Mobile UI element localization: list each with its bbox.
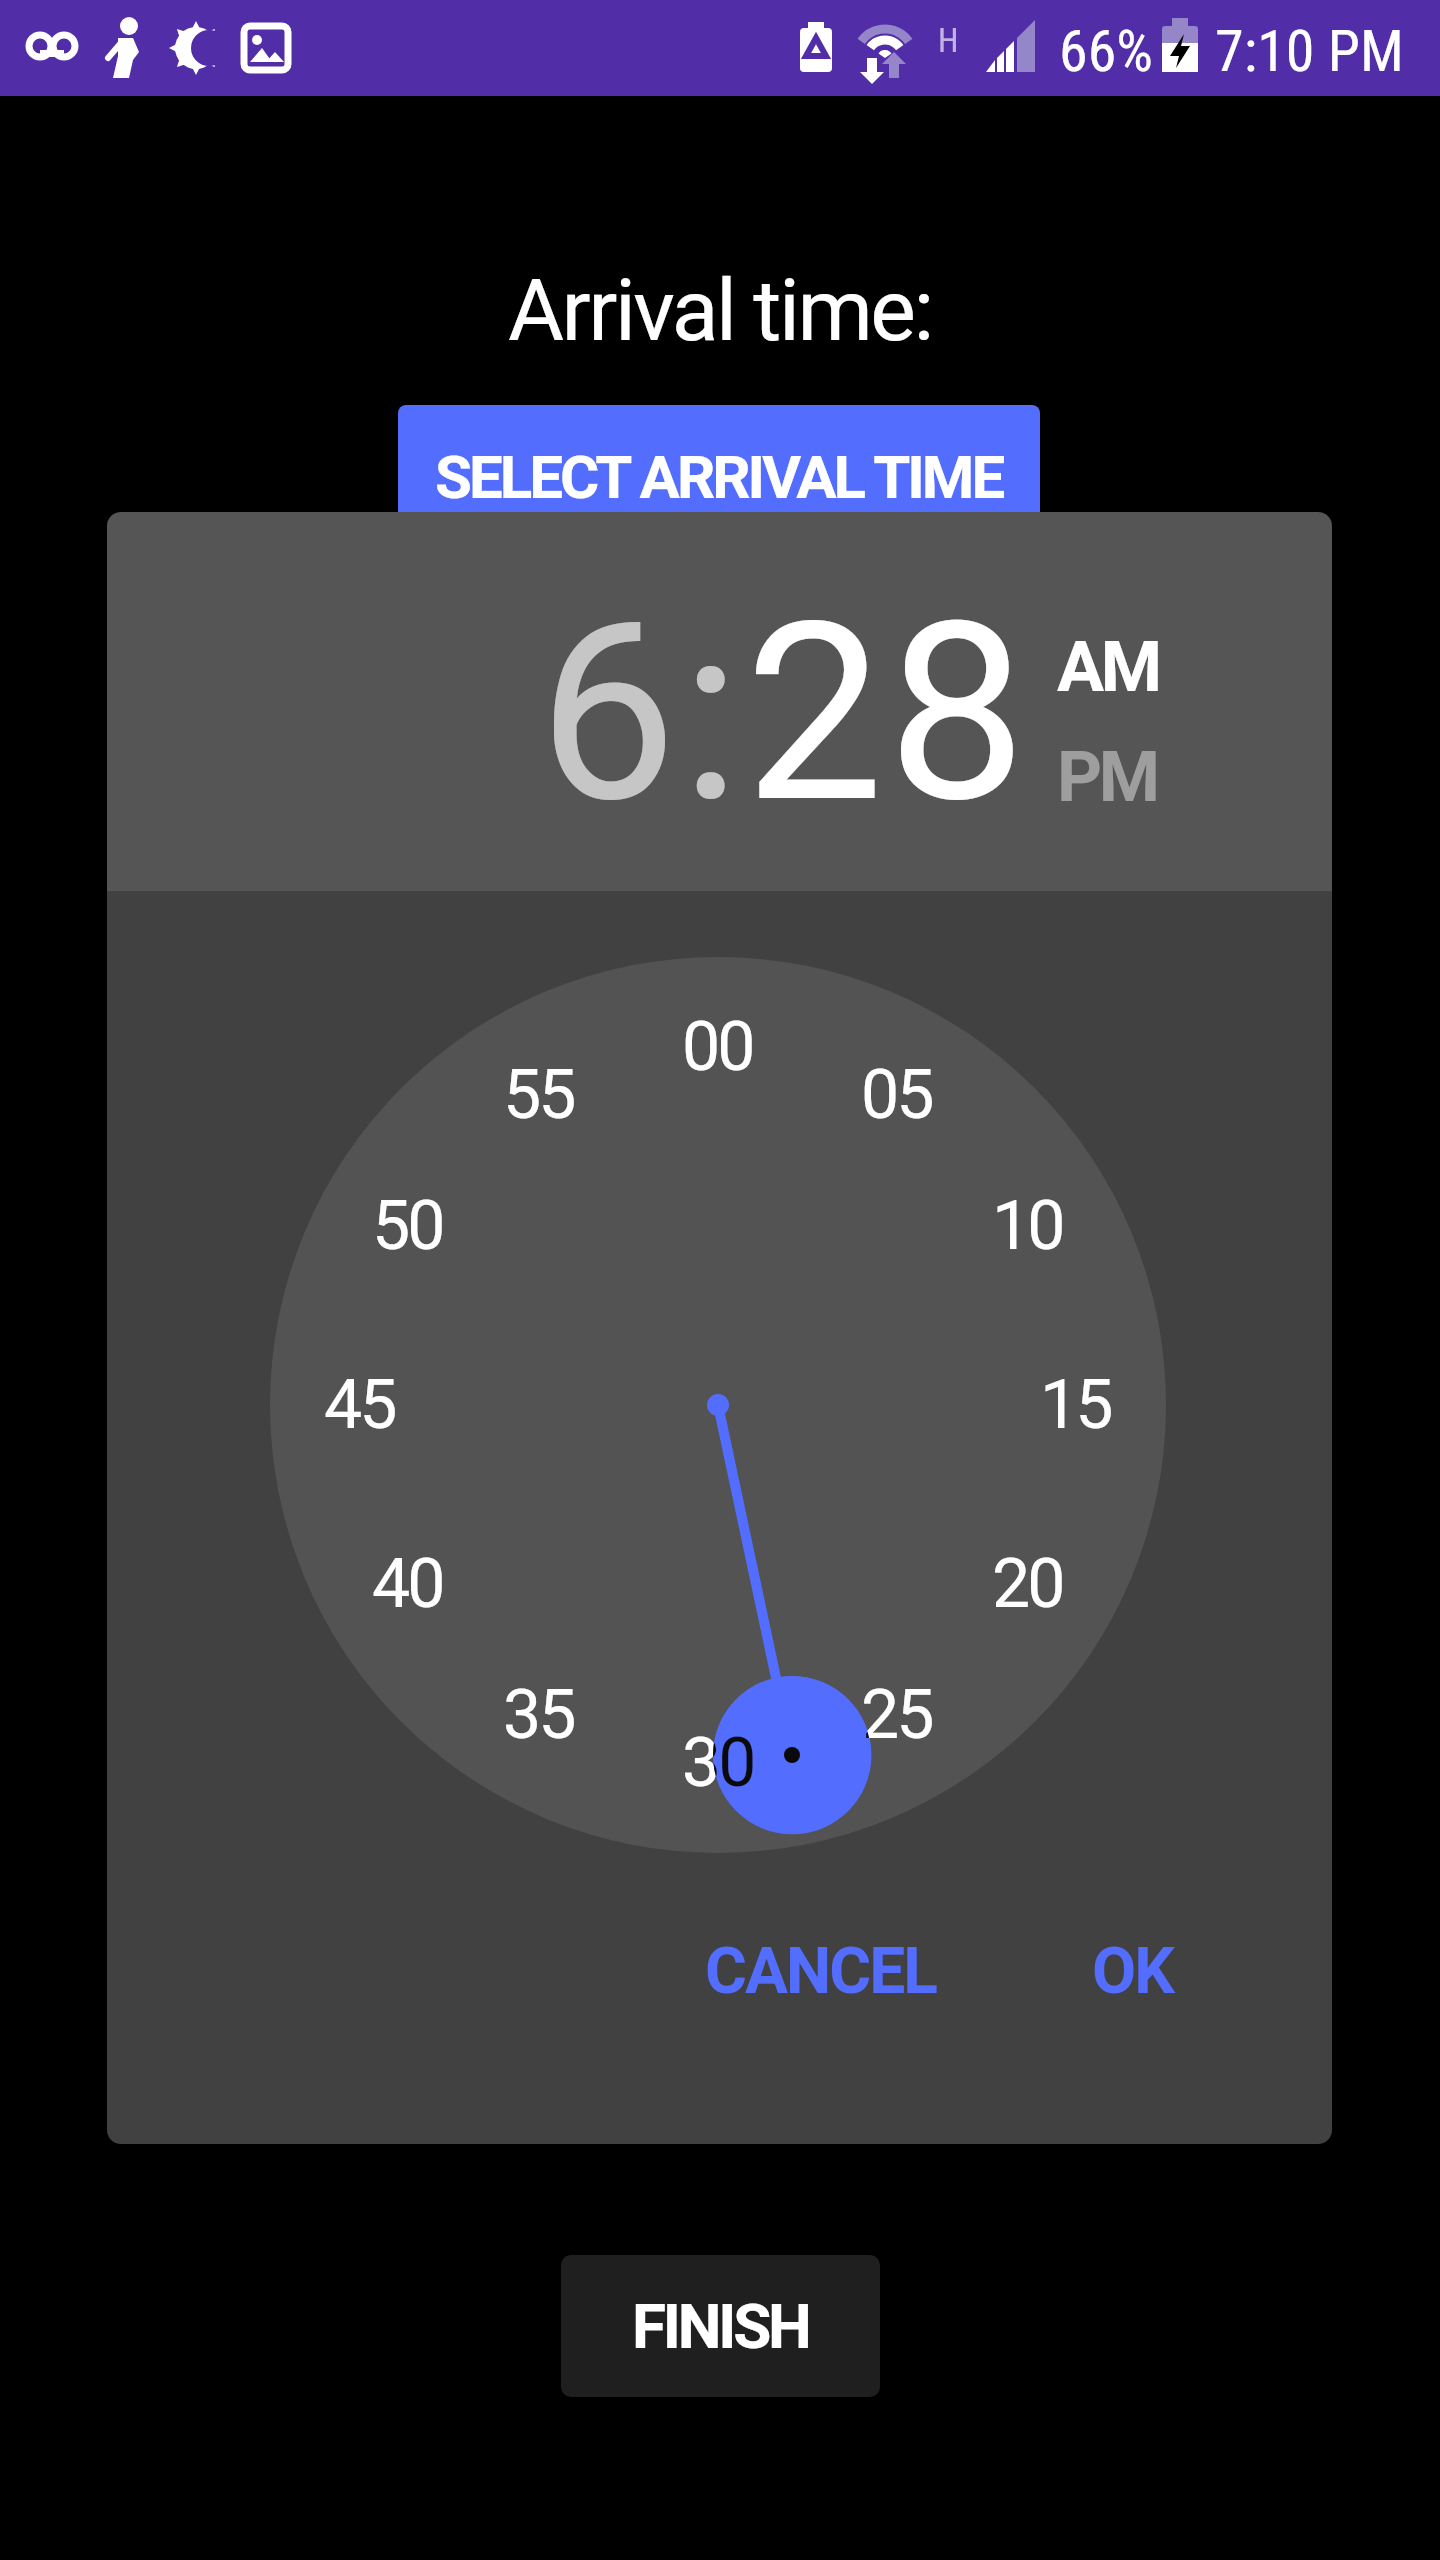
button[interactable]: FINISH — [561, 2255, 880, 2397]
staticText: 25 — [862, 1676, 871, 1755]
staticText: AM — [1057, 626, 1159, 708]
staticText: PM — [1057, 736, 1157, 818]
staticText: 40 — [372, 1544, 443, 1624]
staticText: 25 — [861, 1675, 932, 1755]
staticText: 35 — [503, 1675, 574, 1755]
staticText: Arrival time: — [508, 260, 932, 361]
staticText: 15 — [1040, 1365, 1111, 1445]
staticText: 7:10 PM — [1215, 17, 1404, 85]
staticText: SELECT ARRIVAL TIME — [435, 442, 1003, 512]
staticText: 55 — [503, 1055, 574, 1135]
staticText: FINISH — [632, 2290, 809, 2363]
button[interactable]: SELECT ARRIVAL TIME — [398, 405, 1040, 549]
staticText: 45 — [324, 1365, 395, 1445]
staticText: 05 — [861, 1055, 932, 1135]
button[interactable]: PM — [1003, 735, 1211, 819]
staticText: 00 — [682, 1007, 753, 1087]
staticText: H — [938, 21, 959, 60]
staticText: 20 — [992, 1544, 1063, 1624]
button[interactable]: AM — [1004, 625, 1212, 709]
staticText: 50 — [372, 1186, 443, 1266]
staticText: 30 — [682, 1723, 753, 1803]
staticText: CANCEL — [705, 1934, 936, 2009]
staticText: 30 — [713, 1723, 754, 1803]
staticText: OK — [1092, 1934, 1173, 2009]
staticText: 10 — [992, 1186, 1063, 1266]
staticText: 6:28 — [538, 569, 1031, 858]
button[interactable]: OK — [1035, 1933, 1229, 2010]
button[interactable]: CANCEL — [570, 1933, 1071, 2010]
staticText: 66% — [1059, 17, 1153, 85]
